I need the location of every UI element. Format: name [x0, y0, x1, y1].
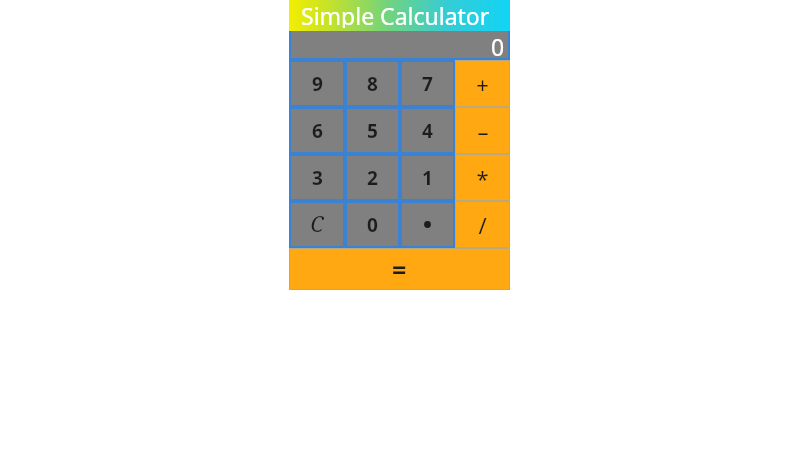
staticText: =	[392, 252, 407, 286]
button[interactable]: 9	[291, 62, 343, 105]
staticText: 6	[312, 118, 323, 144]
staticText: 0	[367, 212, 378, 238]
button[interactable]: Plus	[456, 61, 509, 106]
button[interactable]: 0	[347, 203, 398, 246]
button[interactable]: 7	[402, 62, 453, 105]
button[interactable]: 8	[347, 62, 398, 105]
staticText: Simple Calculator	[301, 0, 490, 28]
staticText: 5	[367, 118, 378, 144]
button[interactable]: 3	[291, 156, 343, 199]
button[interactable]: 5	[347, 109, 398, 152]
button[interactable]: Decimal point	[402, 203, 453, 246]
staticText: 7	[422, 71, 433, 97]
button[interactable]: 6	[291, 109, 343, 152]
button[interactable]: Minus	[456, 108, 509, 153]
button[interactable]: C	[291, 203, 343, 246]
button[interactable]: 2	[347, 156, 398, 199]
staticText: 4	[422, 118, 433, 144]
staticText: –	[477, 116, 489, 146]
button[interactable]: 1	[402, 156, 453, 199]
staticText: *	[476, 163, 489, 193]
staticText: 0	[491, 31, 505, 57]
staticText: 9	[312, 71, 323, 97]
button[interactable]: Divide	[456, 202, 509, 247]
staticText: /	[478, 210, 487, 240]
button[interactable]: Multiply	[456, 155, 509, 200]
staticText: 8	[367, 71, 378, 97]
staticText: +	[476, 69, 489, 99]
staticText: 2	[367, 165, 378, 191]
staticText: 1	[422, 165, 433, 191]
staticText: C	[310, 210, 324, 239]
button[interactable]: =	[290, 249, 509, 289]
staticText: 3	[312, 165, 323, 191]
button[interactable]: 0	[291, 31, 508, 58]
button[interactable]: 4	[402, 109, 453, 152]
